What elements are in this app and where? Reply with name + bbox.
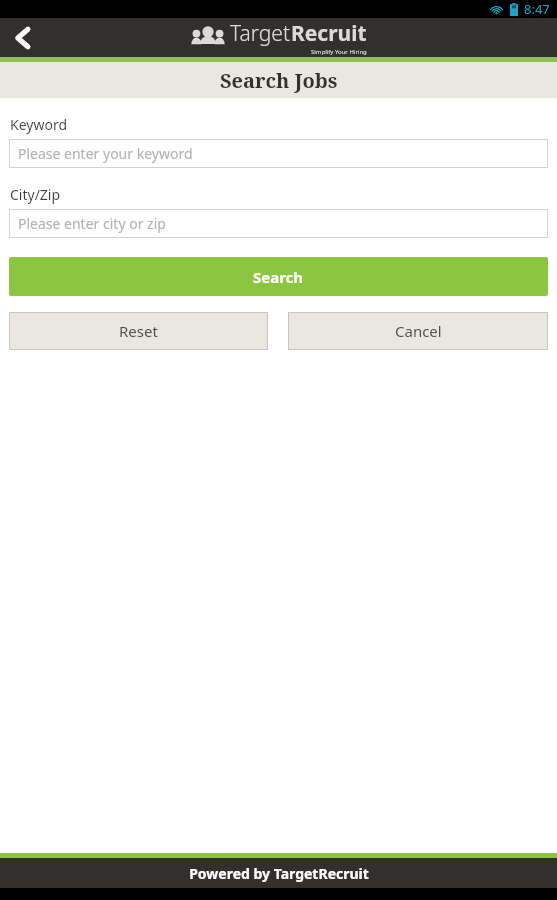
staticText: Target <box>230 19 291 48</box>
staticText: Please enter your keyword <box>18 144 193 163</box>
staticText: City/Zip <box>10 185 61 204</box>
staticText: Recruit <box>291 19 367 48</box>
staticText: Cancel <box>395 321 442 341</box>
button[interactable]: Back <box>0 18 44 57</box>
button[interactable]: Please enter your keyword <box>9 139 548 168</box>
staticText: Simplify Your Hiring <box>311 48 367 56</box>
staticText: Keyword <box>10 115 68 134</box>
staticText: Reset <box>119 321 158 341</box>
button[interactable]: Search <box>9 257 548 296</box>
staticText: Powered by TargetRecruit <box>189 864 369 883</box>
button[interactable]: Reset <box>9 312 268 350</box>
staticText: Search Jobs <box>220 67 338 94</box>
staticText: Please enter city or zip <box>18 214 166 233</box>
button[interactable]: Please enter city or zip <box>9 209 548 238</box>
staticText: Search <box>253 267 304 287</box>
button[interactable]: Cancel <box>288 312 548 350</box>
staticText: 8:47 <box>524 0 550 18</box>
